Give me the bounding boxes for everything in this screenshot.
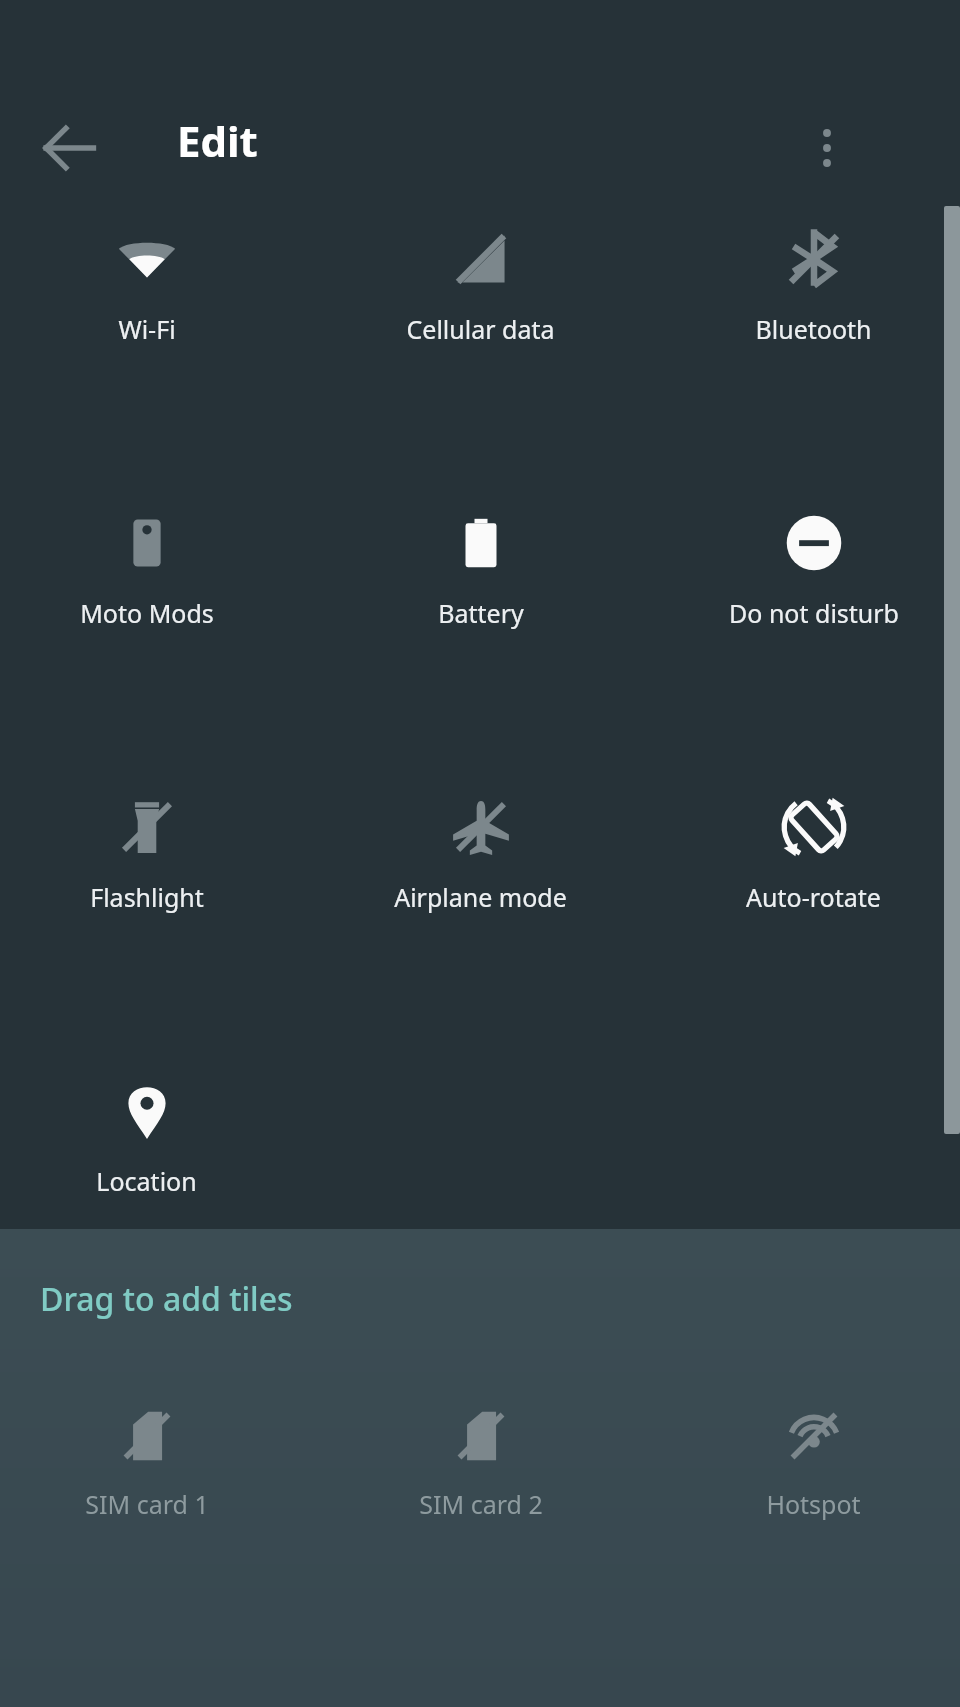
staticText: Auto-rotate <box>746 880 881 914</box>
button[interactable]: Cellular data <box>334 228 627 346</box>
button[interactable]: Moto Mods <box>0 512 293 630</box>
button[interactable]: Do not disturb <box>667 512 960 630</box>
button[interactable]: Airplane mode <box>334 796 627 914</box>
staticText: SIM card 2 <box>419 1487 543 1521</box>
button[interactable]: Location <box>0 1080 293 1198</box>
staticText: Flashlight <box>90 880 204 914</box>
staticText: Hotspot <box>766 1487 861 1521</box>
button[interactable]: SIM card 1 <box>0 1407 293 1521</box>
button[interactable]: Bluetooth <box>667 228 960 346</box>
button[interactable]: Hotspot <box>667 1407 960 1521</box>
staticText: SIM card 1 <box>85 1487 209 1521</box>
staticText: Moto Mods <box>80 596 214 630</box>
staticText: Do not disturb <box>729 596 899 630</box>
staticText: Edit <box>177 112 258 169</box>
staticText: Location <box>96 1164 197 1198</box>
button[interactable]: Battery <box>334 512 627 630</box>
button[interactable]: Back <box>26 105 112 191</box>
button[interactable]: Auto-rotate <box>667 796 960 914</box>
staticText: Wi-Fi <box>118 312 176 346</box>
button[interactable]: Wi-Fi <box>0 228 293 346</box>
staticText: Drag to add tiles <box>40 1277 293 1321</box>
staticText: Battery <box>438 596 524 630</box>
staticText: Bluetooth <box>755 312 872 346</box>
button[interactable]: Flashlight <box>0 796 293 914</box>
staticText: Cellular data <box>406 312 555 346</box>
button[interactable]: More options <box>784 105 870 191</box>
button[interactable]: SIM card 2 <box>334 1407 627 1521</box>
staticText: Airplane mode <box>394 880 567 914</box>
